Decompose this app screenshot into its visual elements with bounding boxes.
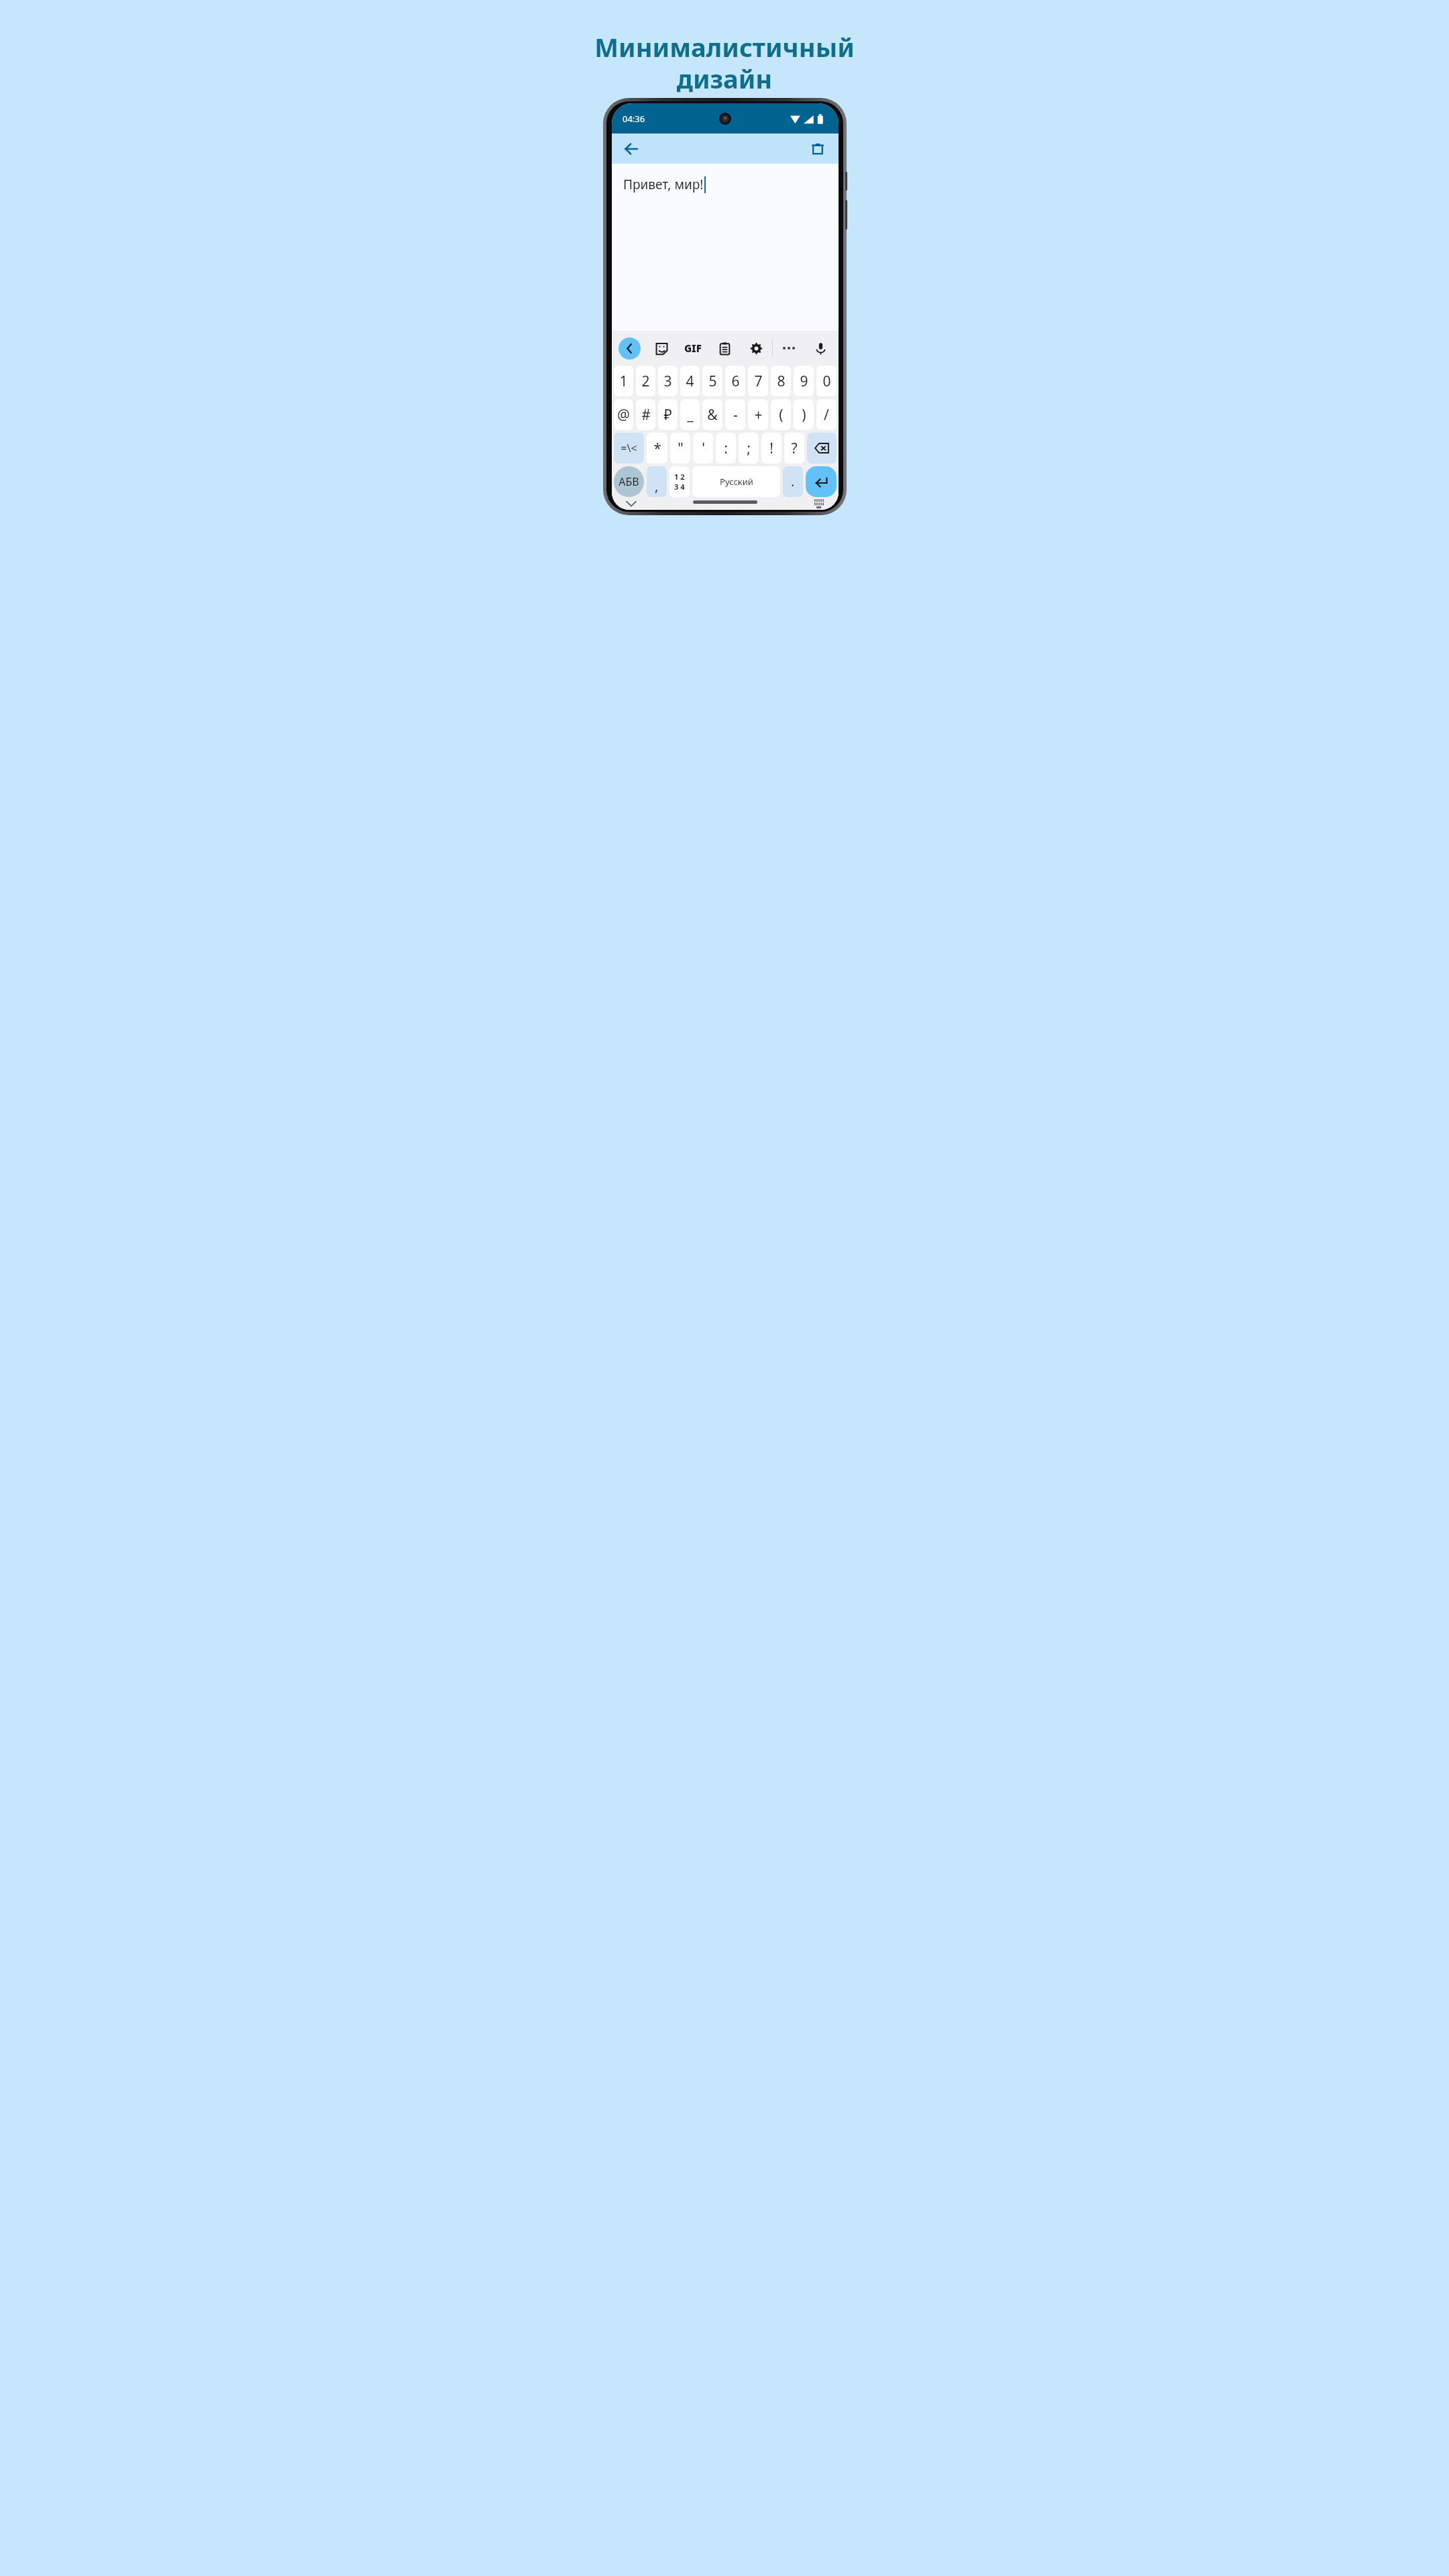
button[interactable]: 4 xyxy=(680,366,700,396)
staticText: # xyxy=(641,405,651,425)
button[interactable]: @ xyxy=(614,399,633,430)
button[interactable]: =\< xyxy=(614,433,644,464)
button[interactable]: Switch keyboard xyxy=(809,497,829,510)
staticText: 9 xyxy=(800,372,808,391)
staticText: 3 4 xyxy=(674,482,685,492)
staticText: - xyxy=(733,405,738,425)
button[interactable]: ? xyxy=(784,433,804,464)
staticText: 04:36 xyxy=(623,113,645,125)
staticText: ) xyxy=(802,405,806,425)
staticText: & xyxy=(707,405,718,425)
button[interactable]: АБВ xyxy=(614,466,644,497)
button[interactable]: * xyxy=(647,433,667,464)
button[interactable]: " xyxy=(670,433,690,464)
staticText: 8 xyxy=(777,372,786,391)
staticText: 0 xyxy=(822,372,831,391)
staticText: ; xyxy=(747,439,751,458)
button[interactable]: _ xyxy=(680,399,700,430)
staticText: ? xyxy=(791,439,798,458)
button[interactable]: - xyxy=(725,399,745,430)
staticText: ' xyxy=(702,439,705,458)
button[interactable]: : xyxy=(716,433,736,464)
button[interactable]: Backspace xyxy=(807,433,837,464)
button[interactable]: Voice input xyxy=(809,337,832,360)
button[interactable]: / xyxy=(816,399,837,430)
button[interactable]: ' xyxy=(693,433,713,464)
staticText: ! xyxy=(769,439,773,458)
staticText: * xyxy=(653,439,661,458)
button[interactable]: ( xyxy=(771,399,791,430)
staticText: 2 xyxy=(641,372,650,391)
button[interactable]: Delete xyxy=(804,135,832,163)
button[interactable]: & xyxy=(702,399,722,430)
button[interactable]: ! xyxy=(761,433,782,464)
staticText: 6 xyxy=(731,372,740,391)
button[interactable]: 6 xyxy=(725,366,745,396)
staticText: 5 xyxy=(708,372,717,391)
staticText: АБВ xyxy=(619,474,639,489)
button[interactable]: # xyxy=(636,399,655,430)
staticText: " xyxy=(678,439,684,458)
button[interactable]: Numbers xyxy=(669,466,690,497)
staticText: ₽ xyxy=(663,405,672,425)
button[interactable]: Русский xyxy=(692,466,780,497)
button[interactable]: ₽ xyxy=(658,399,678,430)
staticText: _ xyxy=(687,405,694,425)
button[interactable]: + xyxy=(748,399,768,430)
staticText: 4 xyxy=(686,372,694,391)
staticText: 1 2 xyxy=(674,472,685,482)
staticText: =\< xyxy=(621,441,637,455)
staticText: . xyxy=(791,472,795,490)
button[interactable]: 3 xyxy=(658,366,678,396)
button[interactable]: ; xyxy=(739,433,759,464)
staticText: GIF xyxy=(684,341,702,355)
staticText: + xyxy=(754,405,763,425)
button[interactable]: More options xyxy=(777,337,800,360)
button[interactable]: Expand xyxy=(619,337,641,360)
button[interactable]: ) xyxy=(794,399,814,430)
button[interactable]: Back xyxy=(617,135,645,163)
button[interactable]: Period xyxy=(783,466,803,497)
button[interactable]: 9 xyxy=(794,366,814,396)
staticText: / xyxy=(824,405,829,425)
staticText: Минималистичный дизайн xyxy=(594,30,855,96)
staticText: Привет, мир! xyxy=(623,176,704,193)
button[interactable]: Stickers xyxy=(650,337,673,360)
staticText: 3 xyxy=(663,372,672,391)
button[interactable]: 0 xyxy=(816,366,837,396)
staticText: Русский xyxy=(720,476,753,488)
button[interactable]: GIF xyxy=(682,337,704,360)
staticText: : xyxy=(724,439,728,458)
staticText: @ xyxy=(617,405,630,425)
button[interactable]: 8 xyxy=(771,366,791,396)
button[interactable]: 1 xyxy=(614,366,633,396)
staticText: ( xyxy=(779,405,784,425)
button[interactable]: Comma xyxy=(647,466,667,497)
button[interactable]: Enter xyxy=(806,466,837,497)
button[interactable]: Clipboard xyxy=(713,337,736,360)
staticText: , xyxy=(655,477,659,495)
button[interactable]: 5 xyxy=(702,366,722,396)
button[interactable]: 7 xyxy=(748,366,768,396)
button[interactable]: Settings xyxy=(745,337,767,360)
staticText: 7 xyxy=(754,372,763,391)
button[interactable]: Hide keyboard xyxy=(621,497,641,510)
button[interactable]: 2 xyxy=(636,366,655,396)
staticText: 1 xyxy=(619,372,628,391)
